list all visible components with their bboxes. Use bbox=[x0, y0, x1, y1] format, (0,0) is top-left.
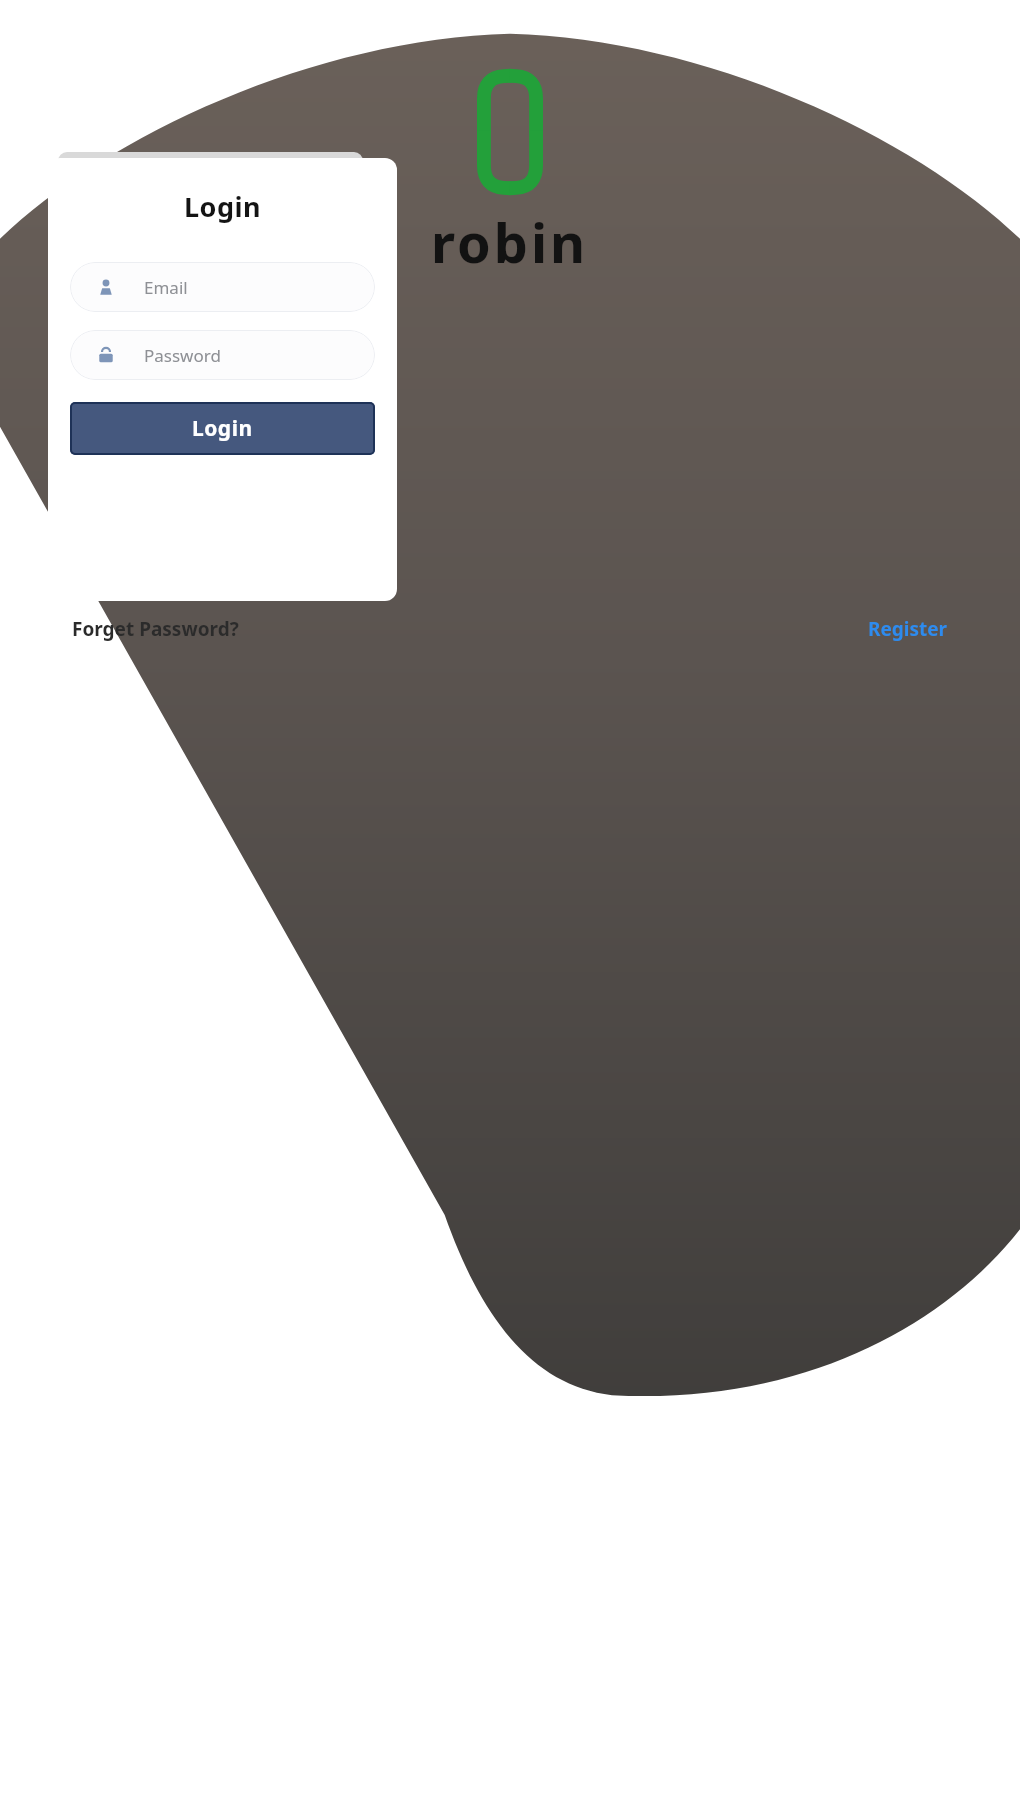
button[interactable]: Password bbox=[70, 330, 375, 380]
staticText: Login bbox=[192, 414, 253, 443]
staticText: Register bbox=[868, 616, 948, 642]
button[interactable]: Register bbox=[864, 612, 952, 646]
staticText: Email bbox=[144, 276, 188, 299]
button[interactable]: Login bbox=[70, 402, 375, 455]
button[interactable]: Forget Password? bbox=[68, 612, 243, 646]
staticText: Password bbox=[144, 344, 221, 367]
staticText: Forget Password? bbox=[72, 616, 239, 642]
button[interactable]: Email bbox=[70, 262, 375, 312]
staticText: Login bbox=[184, 188, 262, 225]
staticText: robin bbox=[431, 205, 589, 279]
